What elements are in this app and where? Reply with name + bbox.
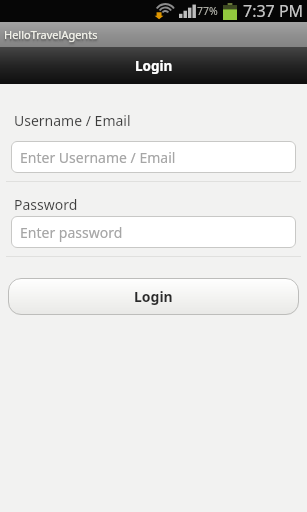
staticText: Password (14, 195, 78, 214)
button[interactable]: Login (8, 278, 299, 315)
staticText: Enter password (20, 223, 123, 242)
button[interactable]: Enter password (11, 216, 296, 248)
button[interactable]: Enter Username / Email (11, 141, 296, 173)
staticText: 77% (197, 4, 218, 18)
staticText: Login (135, 57, 173, 75)
staticText: Username / Email (14, 111, 131, 130)
staticText: HelloTravelAgents (4, 27, 98, 42)
staticText: Login (134, 287, 173, 306)
staticText: Enter Username / Email (20, 148, 176, 167)
staticText: 7:37 PM (243, 0, 304, 22)
